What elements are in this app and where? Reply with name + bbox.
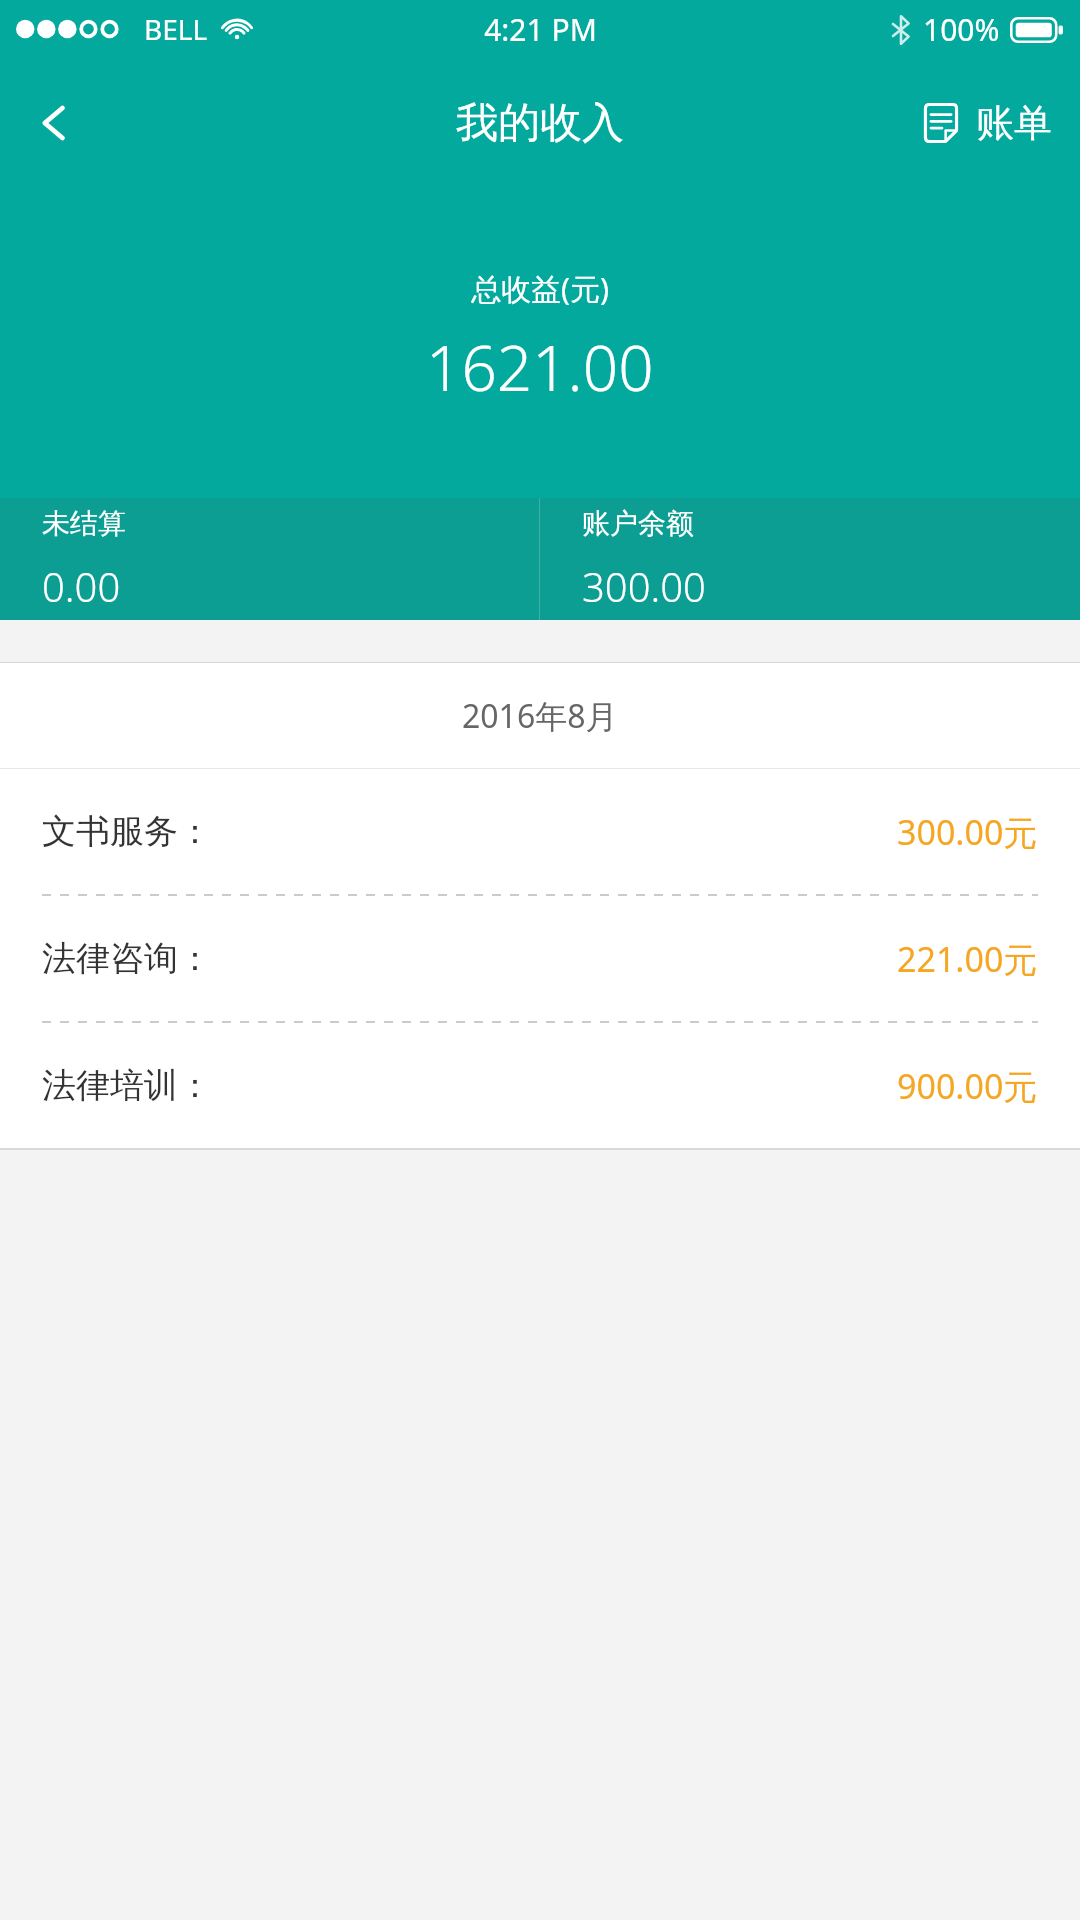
staticText: 账户余额 (582, 506, 694, 541)
staticText: 法律咨询： (42, 937, 212, 980)
staticText: 我的收入 (456, 97, 624, 150)
staticText: 1621.00 (426, 325, 654, 409)
button[interactable]: 未结算 (0, 498, 539, 620)
staticText: 总收益(元) (471, 268, 609, 309)
staticText: 2016年8月 (462, 694, 618, 738)
staticText: 法律培训： (42, 1064, 212, 1107)
button[interactable]: 账户余额 (540, 498, 1080, 620)
staticText: 0.00 (42, 559, 121, 613)
staticText: 文书服务： (42, 810, 212, 853)
button[interactable]: 法律咨询： (0, 896, 1080, 1021)
button[interactable]: 法律培训： (0, 1023, 1080, 1148)
staticText: 900.00元 (897, 1063, 1038, 1109)
staticText: 账单 (976, 99, 1052, 147)
staticText: 4:21 PM (484, 9, 597, 50)
staticText: 300.00元 (897, 809, 1038, 855)
button[interactable]: Back (0, 68, 110, 178)
staticText: BELL (144, 10, 208, 48)
staticText: 221.00元 (897, 936, 1038, 982)
button[interactable]: 账单 (892, 58, 1080, 188)
staticText: 未结算 (42, 506, 126, 541)
staticText: 300.00 (582, 559, 706, 613)
staticText: 100% (923, 9, 1000, 50)
button[interactable]: 文书服务： (0, 769, 1080, 894)
